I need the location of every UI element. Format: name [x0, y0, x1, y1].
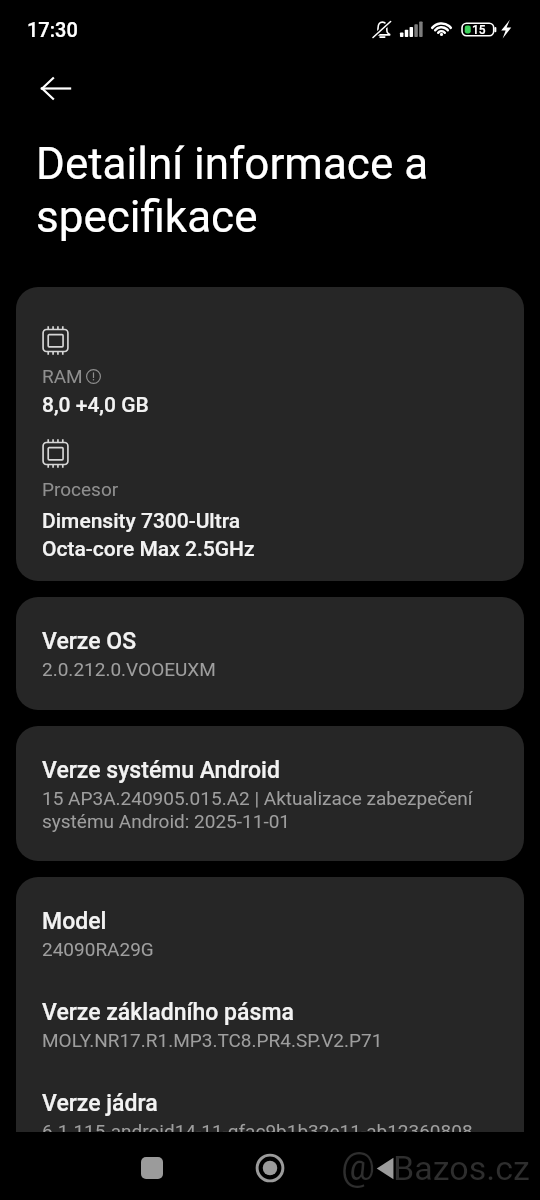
staticText: 8,0 +4,0 GB — [42, 391, 149, 418]
staticText: Bazos.cz — [393, 1148, 530, 1188]
staticText: Procesor — [42, 478, 119, 501]
button[interactable]: Recent apps — [118, 1136, 186, 1200]
staticText: Verze systému Android — [42, 756, 280, 784]
staticText: 15 — [472, 23, 486, 37]
staticText: Model — [42, 907, 107, 935]
button[interactable]: Verze systému Android — [16, 726, 524, 861]
staticText: 6.1.115-android14-11-gfac9b1b32e11-ab123… — [42, 1120, 473, 1132]
staticText: Verze OS — [42, 627, 137, 655]
staticText: Detailní informace a specifikace — [36, 137, 445, 243]
button[interactable]: Model — [16, 877, 524, 1132]
staticText: 24090RA29G — [42, 938, 154, 961]
button[interactable]: Back — [28, 61, 82, 115]
staticText: MOLY.NR17.R1.MP3.TC8.PR4.SP.V2.P71 — [42, 1029, 383, 1052]
staticText: 2.0.212.0.VOOEUXM — [42, 658, 216, 681]
staticText: 15 AP3A.240905.015.A2 | Aktualizace zabe… — [42, 787, 502, 833]
button[interactable]: Home — [236, 1136, 304, 1200]
button[interactable]: Back — [351, 1136, 419, 1200]
button[interactable]: Verze OS — [16, 597, 524, 710]
button[interactable]: RAM — [16, 287, 524, 581]
staticText: Verze jádra — [42, 1089, 158, 1117]
staticText: 17:30 — [27, 18, 78, 41]
staticText: Verze základního pásma — [42, 998, 294, 1026]
staticText: @ — [341, 1145, 376, 1190]
staticText: RAM — [42, 365, 83, 388]
staticText: Dimensity 7300-Ultra Octa-core Max 2.5GH… — [42, 506, 255, 562]
